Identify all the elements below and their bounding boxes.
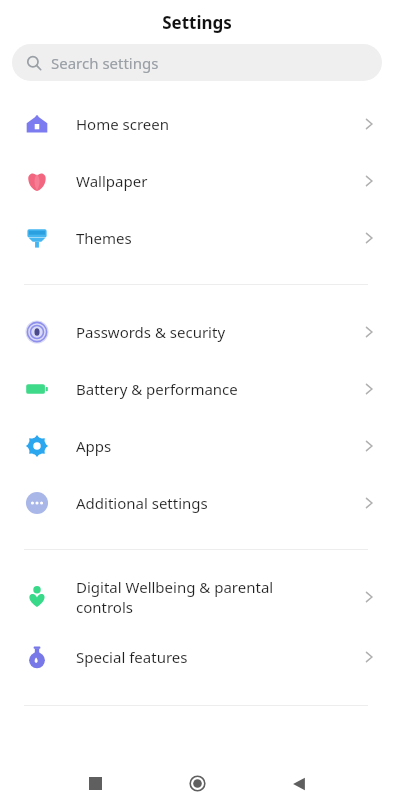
button[interactable]: Home: [166, 758, 228, 809]
button[interactable]: Wallpaper: [0, 152, 394, 209]
button[interactable]: Apps: [0, 417, 394, 474]
button[interactable]: Home screen: [0, 95, 394, 152]
staticText: Home screen: [76, 114, 326, 134]
button[interactable]: Battery & performance: [0, 360, 394, 417]
button[interactable]: Special features: [0, 628, 394, 685]
staticText: Settings: [162, 11, 232, 34]
staticText: Battery & performance: [76, 379, 326, 399]
button[interactable]: Additional settings: [0, 474, 394, 531]
button[interactable]: Search settings: [12, 44, 382, 81]
staticText: Special features: [76, 647, 326, 667]
staticText: Apps: [76, 436, 326, 456]
button[interactable]: Digital Wellbeing & parental controls: [0, 566, 394, 628]
staticText: Themes: [76, 228, 326, 248]
staticText: Wallpaper: [76, 171, 326, 191]
button[interactable]: Passwords & security: [0, 303, 394, 360]
button[interactable]: Themes: [0, 209, 394, 266]
staticText: Search settings: [51, 53, 159, 73]
staticText: Digital Wellbeing & parental controls: [76, 577, 326, 617]
staticText: Passwords & security: [76, 322, 326, 342]
staticText: Additional settings: [76, 493, 326, 513]
button[interactable]: Back: [268, 758, 330, 809]
button[interactable]: Recents: [64, 758, 126, 809]
